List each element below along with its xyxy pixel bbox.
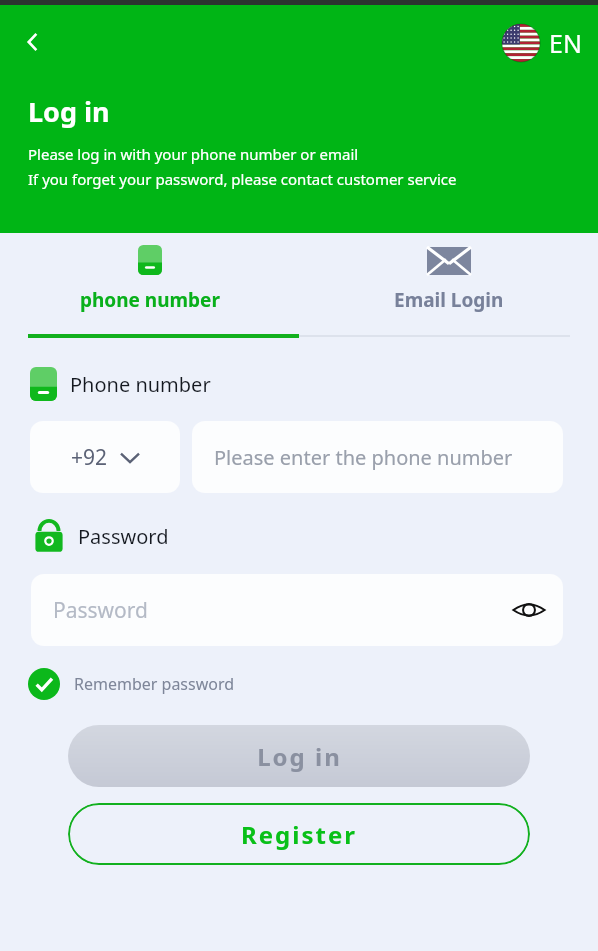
staticText: Please log in with your phone number or … xyxy=(28,144,359,164)
staticText: Register xyxy=(241,818,357,851)
staticText: Password xyxy=(78,523,169,550)
button[interactable]: Password xyxy=(31,574,563,646)
staticText: EN xyxy=(549,26,582,60)
staticText: Remember password xyxy=(74,673,235,695)
button[interactable]: Register xyxy=(68,803,530,865)
button[interactable]: phone number xyxy=(0,233,299,345)
button[interactable]: Back xyxy=(12,21,54,63)
button[interactable]: Show password xyxy=(507,588,551,632)
staticText: Phone number xyxy=(70,371,211,398)
button[interactable]: Log in xyxy=(68,725,530,787)
staticText: Log in xyxy=(257,740,342,773)
staticText: +92 xyxy=(71,443,108,472)
button[interactable]: Please enter the phone number xyxy=(192,421,563,493)
staticText: Email Login xyxy=(394,287,504,313)
button[interactable]: Remember password xyxy=(26,666,237,702)
staticText: phone number xyxy=(80,287,220,313)
button[interactable]: EN xyxy=(498,22,586,64)
staticText: If you forget your password, please cont… xyxy=(28,169,457,189)
staticText: Please enter the phone number xyxy=(214,444,513,471)
button[interactable]: Email Login xyxy=(299,233,598,345)
button[interactable]: +92 xyxy=(30,421,180,493)
staticText: Password xyxy=(53,596,148,625)
staticText: Log in xyxy=(28,93,110,130)
